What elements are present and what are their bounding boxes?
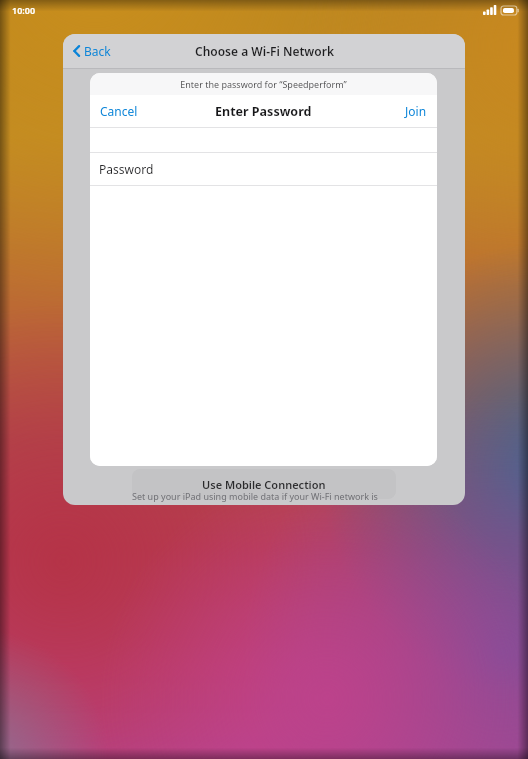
staticText: Join xyxy=(405,103,427,119)
button[interactable]: Join xyxy=(395,96,437,126)
button[interactable]: Back xyxy=(63,39,121,63)
staticText: Password xyxy=(99,161,154,177)
button[interactable]: Use Mobile Connection xyxy=(132,469,396,499)
staticText: 10:00 xyxy=(12,4,36,16)
button[interactable]: Password xyxy=(90,153,437,185)
staticText: Use Mobile Connection xyxy=(202,477,326,492)
staticText: Enter Password xyxy=(215,103,312,120)
staticText: Set up your iPad using mobile data if yo… xyxy=(132,490,378,502)
staticText: Back xyxy=(84,43,111,59)
staticText: Choose a Wi-Fi Network xyxy=(195,43,334,59)
staticText: Enter the password for “Speedperform” xyxy=(180,78,347,90)
button[interactable]: Cancel xyxy=(90,96,148,126)
staticText: Cancel xyxy=(100,103,138,119)
